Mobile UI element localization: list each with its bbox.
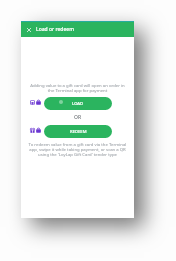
staticText: To redeem value from a gift card via the… xyxy=(24,141,131,157)
button[interactable]: Close xyxy=(21,22,36,37)
button[interactable]: REDEEM xyxy=(44,125,112,138)
staticText: LOAD xyxy=(72,101,84,107)
staticText: Load or redeem xyxy=(36,26,74,33)
staticText: OR xyxy=(21,114,134,121)
staticText: Adding value to a gift card will open an… xyxy=(24,82,131,93)
staticText: REDEEM xyxy=(70,129,87,135)
button[interactable]: LOAD xyxy=(44,97,112,110)
